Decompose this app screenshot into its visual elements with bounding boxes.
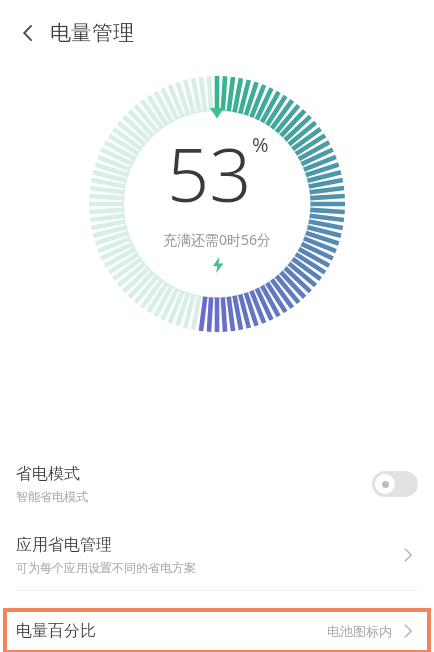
staticText: 电量百分比 xyxy=(16,621,327,641)
staticText: 省电模式 xyxy=(16,464,80,484)
button[interactable]: 应用省电管理 xyxy=(0,520,434,590)
staticText: 智能省电模式 xyxy=(16,489,88,504)
staticText: 可为每个应用设置不同的省电方案 xyxy=(16,560,196,575)
staticText: 电量管理 xyxy=(50,20,134,46)
staticText: 53 xyxy=(167,123,252,224)
button[interactable]: Power saving toggle xyxy=(372,471,418,497)
button[interactable]: 电量百分比 xyxy=(5,610,429,652)
button[interactable]: Back xyxy=(8,13,48,53)
staticText: 应用省电管理 xyxy=(16,535,112,555)
button[interactable]: 省电模式 xyxy=(0,448,434,520)
staticText: 充满还需0时56分 xyxy=(163,230,272,249)
staticText: 电池图标内 xyxy=(327,623,392,639)
staticText: % xyxy=(252,131,269,158)
